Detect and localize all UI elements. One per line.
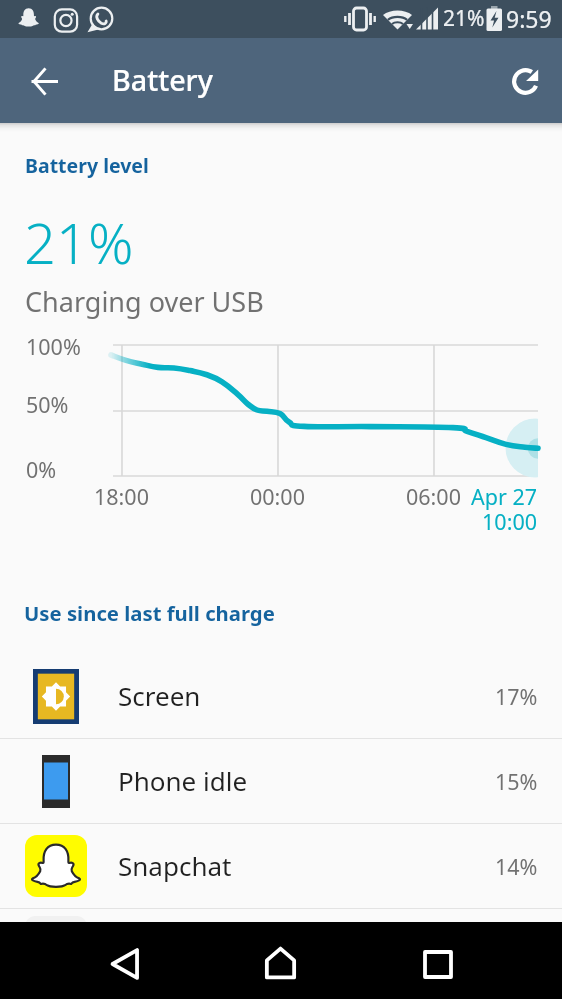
staticText: Charging over USB [25, 283, 264, 320]
button[interactable]: Home [249, 942, 313, 999]
button[interactable]: Phone idle [0, 739, 562, 824]
staticText: Phone idle [118, 763, 248, 798]
button[interactable]: Snapchat [0, 824, 562, 909]
staticText: 18:00 [94, 482, 149, 511]
button[interactable]: Navigate up [18, 55, 70, 107]
staticText: Apr 27 10:00 [466, 482, 537, 536]
staticText: 14% [495, 852, 538, 881]
staticText: 50% [26, 390, 69, 419]
staticText: Use since last full charge [24, 599, 275, 627]
staticText: 17% [495, 682, 538, 711]
staticText: Battery [112, 60, 213, 99]
staticText: Screen [118, 678, 201, 713]
staticText: 06:00 [406, 482, 461, 511]
staticText: 21% [443, 4, 485, 33]
staticText: 15% [495, 767, 538, 796]
staticText: 21% [24, 204, 134, 280]
button[interactable]: Recent apps [405, 942, 469, 999]
staticText: Snapchat [118, 848, 232, 883]
staticText: 0% [26, 455, 57, 484]
staticText: 100% [26, 332, 81, 361]
button[interactable]: Screen [0, 654, 562, 739]
staticText: 9:59 [506, 3, 552, 34]
staticText: Battery level [25, 152, 149, 179]
button[interactable]: Back [93, 942, 157, 999]
staticText: 00:00 [250, 482, 305, 511]
button[interactable]: Refresh [501, 57, 549, 105]
